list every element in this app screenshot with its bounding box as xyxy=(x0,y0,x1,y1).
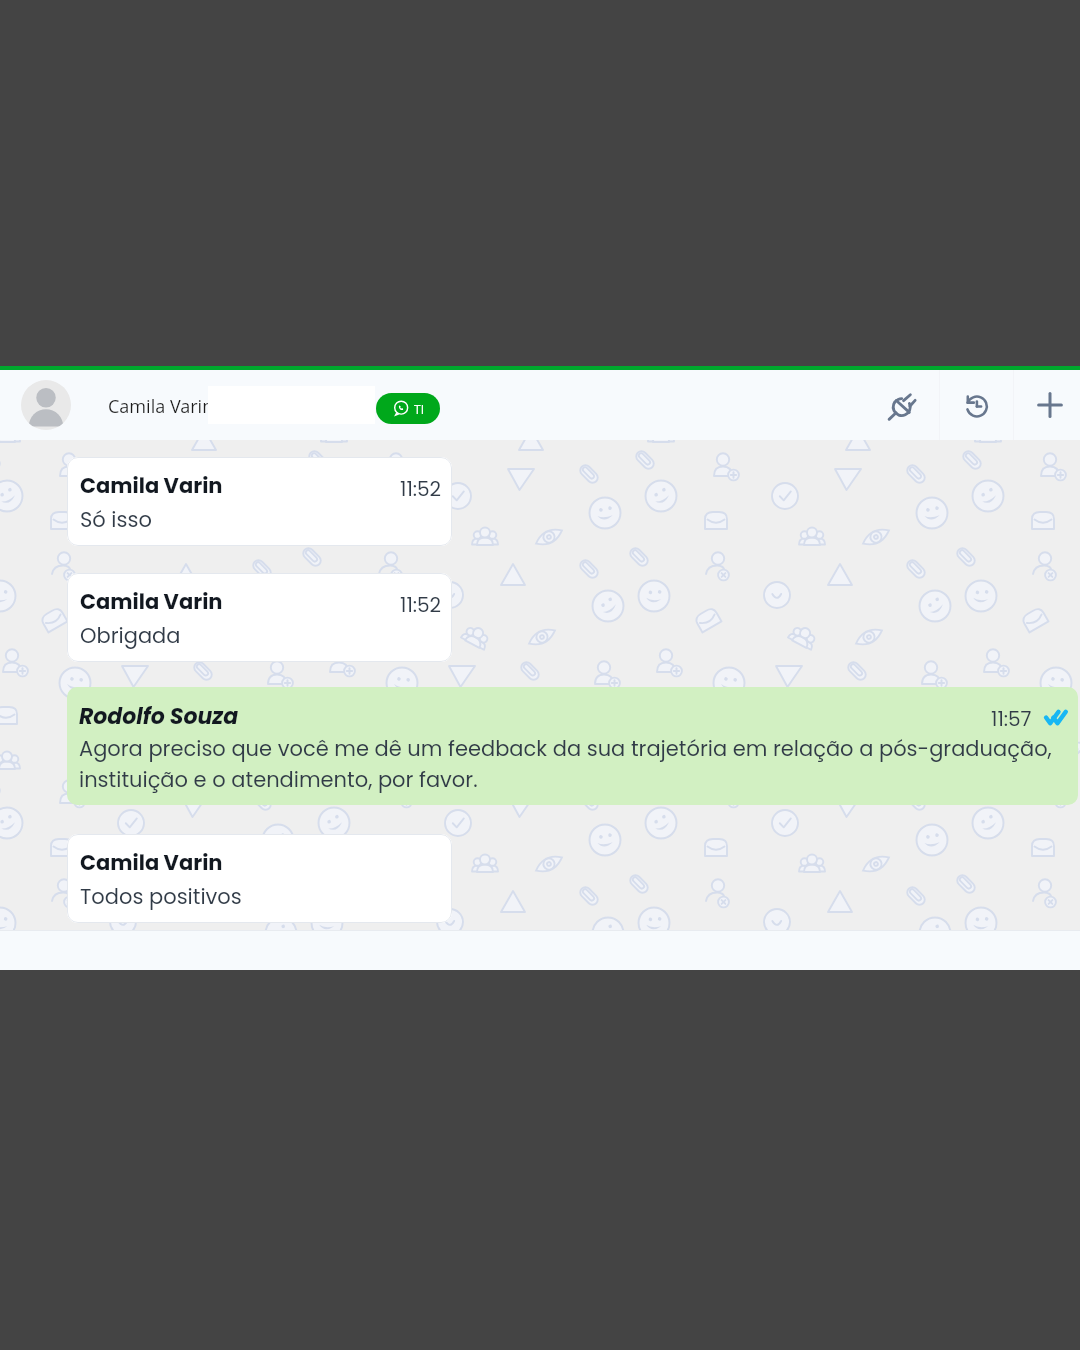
button[interactable]: Camila Varin xyxy=(67,457,452,546)
staticText: 11:57 xyxy=(991,705,1032,733)
staticText: Obrigada xyxy=(80,621,181,650)
button[interactable]: TI xyxy=(376,393,440,424)
staticText: Rodolfo Souza xyxy=(79,701,239,732)
staticText: 11:52 xyxy=(400,591,442,619)
button[interactable]: Contact avatar xyxy=(21,380,71,430)
staticText: TI xyxy=(414,401,424,417)
button[interactable]: Connect integration xyxy=(872,370,932,440)
button[interactable]: Add xyxy=(1020,370,1080,440)
staticText: Agora preciso que você me dê um feedback… xyxy=(79,734,1064,794)
staticText: Camila Varin xyxy=(108,394,214,419)
staticText: 11:52 xyxy=(400,475,442,503)
staticText: Camila Varin xyxy=(80,587,223,616)
staticText: Todos positivos xyxy=(80,882,242,911)
button[interactable]: Camila Varin xyxy=(67,573,452,662)
staticText: Camila Varin xyxy=(80,848,223,877)
button[interactable]: Rodolfo Souza xyxy=(67,687,1078,805)
button[interactable]: Camila Varin xyxy=(67,834,452,923)
button[interactable]: History xyxy=(946,370,1006,440)
staticText: Só isso xyxy=(80,505,152,534)
staticText: Camila Varin xyxy=(80,471,223,500)
